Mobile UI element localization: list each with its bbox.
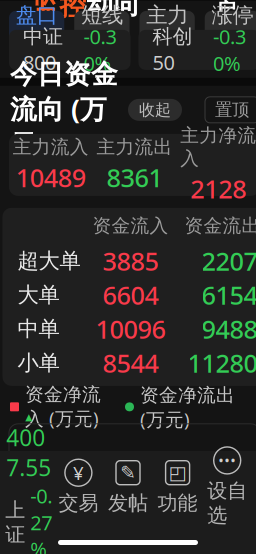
- staticText: ▲: [25, 412, 32, 422]
- staticText: ◰: [169, 462, 187, 483]
- staticText: 盘口必读: [16, 2, 58, 54]
- button[interactable]: 涨停雷达: [205, 11, 256, 46]
- button[interactable]: ▲: [4, 412, 54, 554]
- staticText: 4007.55: [6, 422, 51, 483]
- staticText: 超大单: [17, 248, 80, 274]
- staticText: 功能: [158, 491, 198, 515]
- staticText: 8544: [102, 346, 158, 380]
- button[interactable]: ◰: [153, 459, 202, 515]
- staticText: 9488: [201, 312, 256, 346]
- staticText: •••: [218, 451, 236, 470]
- staticText: 6604: [102, 278, 158, 312]
- button[interactable]: •••: [202, 446, 252, 527]
- staticText: 主力流出: [96, 136, 172, 158]
- staticText: 今日资金流向 (万元): [10, 58, 118, 162]
- staticText: 450: [83, 518, 125, 551]
- staticText: 资金净流入 (万元): [25, 383, 101, 431]
- staticText: 6154: [201, 278, 256, 312]
- staticText: 2128: [190, 172, 246, 206]
- button[interactable]: ✎: [103, 459, 153, 515]
- staticText: 中证800: [23, 24, 63, 75]
- staticText: 交易: [58, 491, 98, 515]
- staticText: 资金流出: [184, 214, 256, 237]
- staticText: 1678: [15, 518, 71, 551]
- staticText: 上证: [5, 498, 25, 547]
- staticText: 中单: [17, 316, 59, 342]
- staticText: 资金流入: [92, 214, 168, 237]
- staticText: ¥: [73, 460, 84, 485]
- staticText: T+0主力监控: [32, 0, 86, 22]
- staticText: 深度解码主力动向: [86, 0, 167, 21]
- staticText: 3885: [102, 244, 158, 278]
- staticText: 主力资金: [146, 2, 188, 54]
- staticText: 10096: [95, 312, 165, 346]
- staticText: 科创50: [152, 24, 192, 75]
- staticText: -0.30%: [83, 23, 116, 76]
- staticText: 短线盯盘: [81, 2, 123, 54]
- staticText: 发帖: [108, 491, 148, 515]
- staticText: -2736: [201, 449, 251, 516]
- staticText: -0.30%: [213, 23, 246, 76]
- staticText: 608: [144, 518, 186, 551]
- button[interactable]: 置顶: [205, 97, 256, 123]
- staticText: 大单: [17, 282, 59, 308]
- staticText: 2207: [201, 244, 256, 278]
- staticText: 11280: [187, 346, 256, 380]
- staticText: 主力流入: [13, 136, 89, 158]
- button[interactable]: 短线盯盘: [74, 11, 129, 46]
- staticText: ✎: [120, 462, 136, 483]
- staticText: 点击开启: [215, 0, 236, 24]
- button[interactable]: ¥: [54, 459, 103, 515]
- staticText: 涨停雷达: [211, 2, 253, 54]
- button[interactable]: 收起: [128, 99, 182, 121]
- staticText: -0.27%: [30, 483, 52, 554]
- staticText: 小单: [17, 350, 59, 376]
- staticText: 8361: [106, 160, 162, 194]
- staticText: 置顶: [215, 99, 249, 120]
- button[interactable]: 主力资金: [139, 11, 195, 46]
- button[interactable]: 盘口必读: [9, 11, 64, 46]
- staticText: 设自选: [207, 478, 247, 527]
- staticText: 收起: [139, 100, 171, 120]
- staticText: 资金净流出 (万元): [140, 382, 235, 432]
- staticText: 10489: [16, 160, 86, 194]
- staticText: 主力净流入: [180, 124, 256, 170]
